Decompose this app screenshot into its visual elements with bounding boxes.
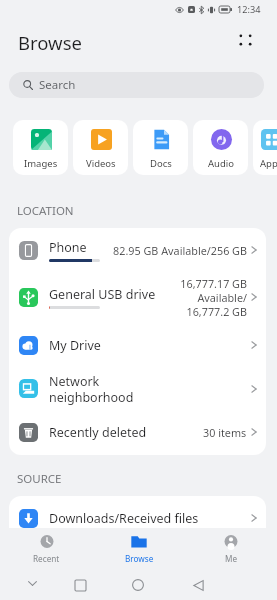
- staticText: Downloads/Received files: [49, 510, 251, 527]
- button[interactable]: General USB drive: [9, 272, 266, 322]
- button[interactable]: Recently deleted: [9, 409, 266, 455]
- button[interactable]: Audio: [193, 120, 248, 175]
- staticText: Audio: [208, 157, 234, 170]
- staticText: Bluetooth: [49, 554, 251, 571]
- staticText: Images: [24, 157, 58, 170]
- button[interactable]: Phone: [9, 228, 266, 272]
- button[interactable]: Search: [9, 72, 264, 98]
- staticText: 82.95 GB Available/256 GB: [113, 243, 247, 258]
- button[interactable]: Network neighborhood: [9, 368, 266, 409]
- staticText: Phone: [49, 239, 87, 256]
- button[interactable]: Me: [185, 528, 277, 570]
- staticText: Videos: [86, 157, 116, 170]
- staticText: Browse: [125, 553, 154, 564]
- staticText: Browse: [18, 30, 82, 55]
- button[interactable]: Browse: [93, 528, 185, 570]
- button[interactable]: Back: [186, 573, 210, 597]
- staticText: 16,777.17 GB Available/ 16,777.2 GB: [180, 276, 247, 319]
- staticText: Me: [225, 553, 238, 564]
- button[interactable]: Hide keyboard: [20, 571, 44, 595]
- button[interactable]: Home: [126, 573, 150, 597]
- staticText: Apps: [260, 157, 277, 170]
- staticText: 30 items: [203, 425, 247, 440]
- staticText: Docs: [150, 157, 172, 170]
- button[interactable]: More options: [234, 29, 256, 51]
- staticText: 12:34: [237, 3, 261, 16]
- staticText: Network neighborhood: [49, 373, 251, 405]
- staticText: My Drive: [49, 337, 251, 354]
- button[interactable]: Recent: [0, 528, 93, 570]
- button[interactable]: Apps: [253, 120, 277, 175]
- button[interactable]: Downloads/Received files: [9, 496, 266, 540]
- staticText: Recent: [33, 553, 60, 564]
- staticText: Recently deleted: [49, 424, 203, 441]
- button[interactable]: Videos: [73, 120, 128, 175]
- button[interactable]: Docs: [133, 120, 188, 175]
- button[interactable]: Images: [13, 120, 68, 175]
- staticText: Search: [39, 77, 76, 93]
- staticText: SOURCE: [17, 471, 62, 487]
- button[interactable]: Bluetooth: [9, 540, 266, 584]
- button[interactable]: Recents: [68, 573, 92, 597]
- staticText: LOCATION: [17, 203, 74, 219]
- button[interactable]: My Drive: [9, 322, 266, 368]
- staticText: General USB drive: [49, 286, 156, 303]
